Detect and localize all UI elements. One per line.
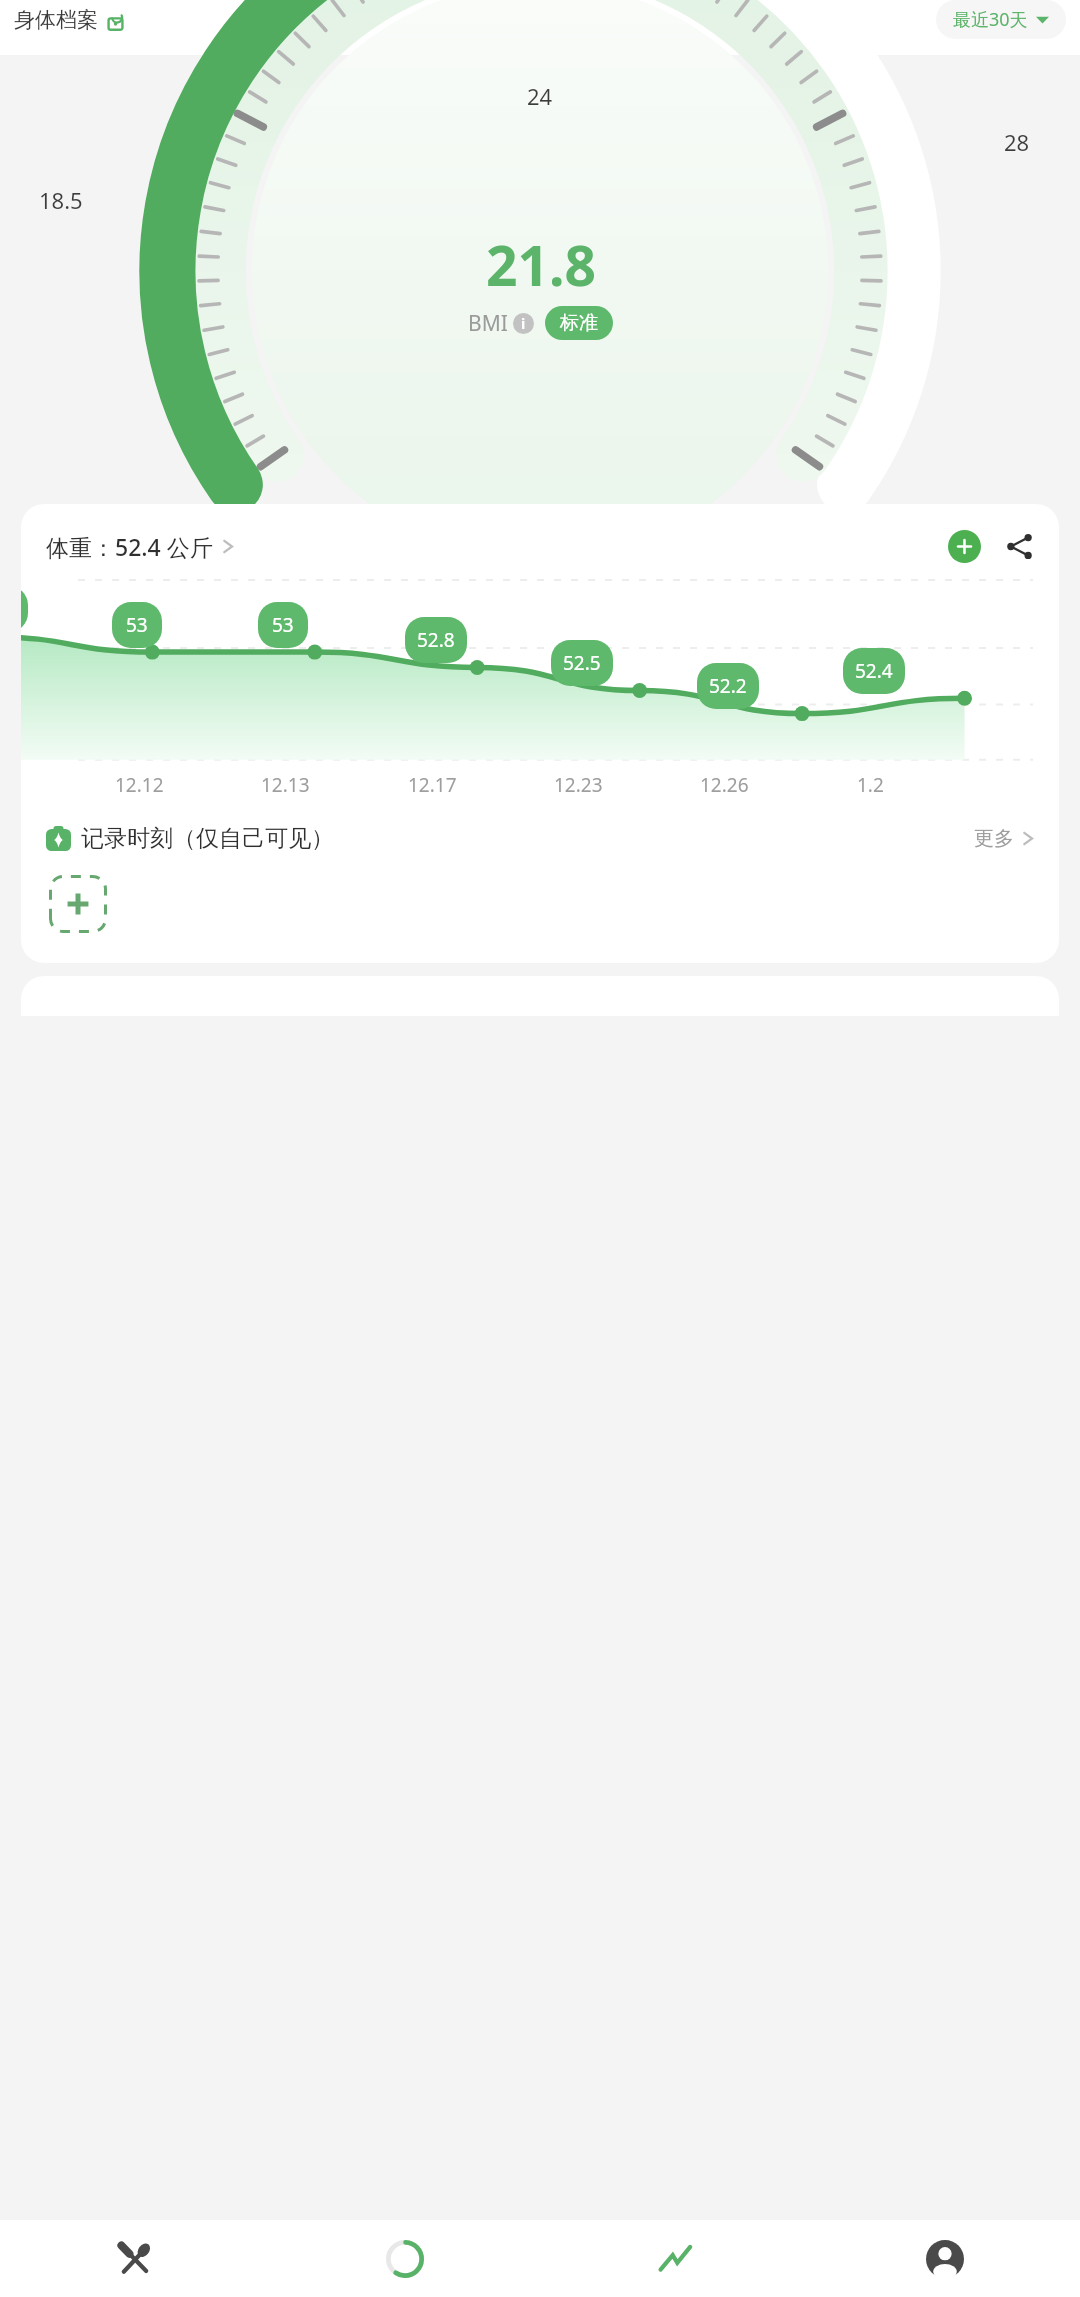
button[interactable]: Add photo bbox=[49, 875, 107, 933]
button[interactable]: 身体档案 bbox=[14, 7, 126, 33]
staticText: 52.2 bbox=[709, 673, 747, 699]
staticText: 12.17 bbox=[408, 772, 457, 798]
staticText: 12.13 bbox=[261, 772, 310, 798]
button[interactable]: Add weight record bbox=[948, 530, 981, 563]
staticText: 标准 bbox=[560, 311, 598, 335]
staticText: 53 bbox=[272, 612, 294, 638]
button[interactable]: Diet bbox=[0, 2220, 270, 2297]
staticText: 12.12 bbox=[115, 772, 164, 798]
button[interactable]: 体重：52.4 公斤 bbox=[46, 531, 236, 562]
button[interactable]: Weight trend chart bbox=[21, 567, 1059, 802]
staticText: 18.5 bbox=[39, 185, 83, 215]
staticText: 更多 bbox=[974, 826, 1014, 851]
staticText: BMI bbox=[468, 309, 508, 338]
button[interactable]: Activity ring bbox=[270, 2220, 540, 2297]
staticText: 体重：52.4 公斤 bbox=[46, 531, 213, 562]
staticText: 52.4 bbox=[855, 658, 893, 684]
staticText: 最近30天 bbox=[953, 7, 1028, 32]
staticText: 21.8 bbox=[486, 227, 596, 302]
staticText: i bbox=[521, 314, 526, 333]
staticText: 53 bbox=[126, 612, 148, 638]
button[interactable]: 最近30天 bbox=[936, 0, 1066, 39]
button[interactable]: BMI gauge 21.8 standard bbox=[0, 59, 1080, 479]
other: Privacy unlocked bbox=[105, 10, 126, 31]
button[interactable]: Trends bbox=[540, 2220, 810, 2297]
staticText: 28 bbox=[1004, 127, 1030, 157]
button[interactable]: Profile bbox=[810, 2220, 1080, 2297]
staticText: 身体档案 bbox=[14, 7, 98, 33]
staticText: 24 bbox=[527, 81, 553, 111]
staticText: 12.26 bbox=[700, 772, 749, 798]
button[interactable]: 标准 bbox=[545, 306, 613, 340]
button[interactable]: Share bbox=[1003, 530, 1036, 563]
button[interactable]: BMI info bbox=[513, 313, 534, 334]
staticText: 1.2 bbox=[857, 772, 884, 798]
staticText: 12.23 bbox=[554, 772, 603, 798]
staticText: 52.8 bbox=[417, 627, 455, 653]
button[interactable]: 记录时刻（仅自己可见） bbox=[21, 802, 1059, 859]
staticText: 记录时刻（仅自己可见） bbox=[81, 824, 334, 853]
staticText: 52.5 bbox=[563, 650, 601, 676]
